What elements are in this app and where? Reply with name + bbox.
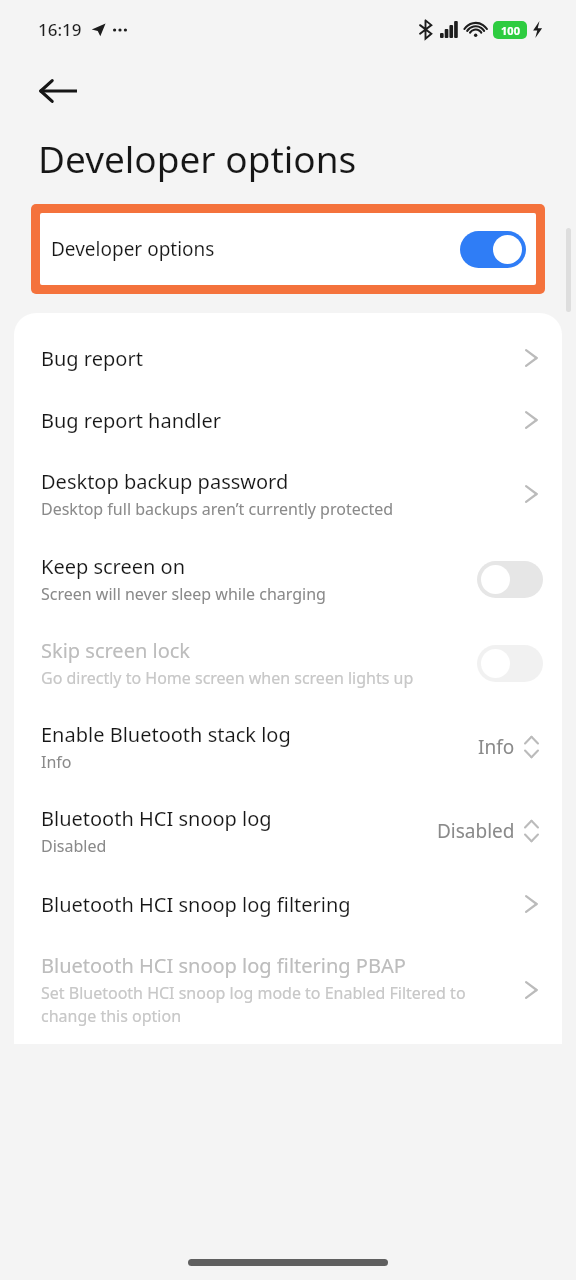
staticText: Bluetooth HCI snoop log filtering [41,891,351,918]
staticText: Bluetooth HCI snoop log [41,805,272,832]
button[interactable]: Bug report [14,327,562,389]
staticText: Screen will never sleep while charging [41,583,326,605]
button[interactable]: Bug report handler [14,389,562,451]
button[interactable]: Skip screen lock [14,621,562,705]
staticText: Bug report handler [41,407,222,434]
staticText: Enable Bluetooth stack log [41,721,291,748]
button[interactable]: Bluetooth HCI snoop log filtering [14,873,562,935]
staticText: Developer options [51,236,215,262]
staticText: Set Bluetooth HCI snoop log mode to Enab… [41,982,509,1027]
staticText: Disabled [437,818,515,844]
staticText: Info [41,751,72,773]
staticText: 16:19 [38,18,82,41]
staticText: Developer options [38,133,357,183]
button[interactable]: Back [26,59,90,123]
staticText: Keep screen on [41,553,186,580]
staticText: Skip screen lock [41,637,191,664]
staticText: Desktop full backups aren’t currently pr… [41,498,394,520]
button[interactable]: Bluetooth HCI snoop log filtering PBAP [14,935,562,1044]
staticText: Bug report [41,345,143,372]
staticText: Info [478,734,515,760]
button[interactable]: Enable Bluetooth stack log [14,705,562,789]
staticText: Disabled [41,835,107,857]
staticText: Desktop backup password [41,468,289,495]
button[interactable]: Keep screen on [14,537,562,621]
button[interactable]: Bluetooth HCI snoop log [14,789,562,873]
staticText: Go directly to Home screen when screen l… [41,667,414,689]
button[interactable]: Desktop backup password [14,451,562,537]
button[interactable]: Developer options [40,213,536,285]
staticText: 100 [501,23,520,38]
staticText: Bluetooth HCI snoop log filtering PBAP [41,952,406,979]
